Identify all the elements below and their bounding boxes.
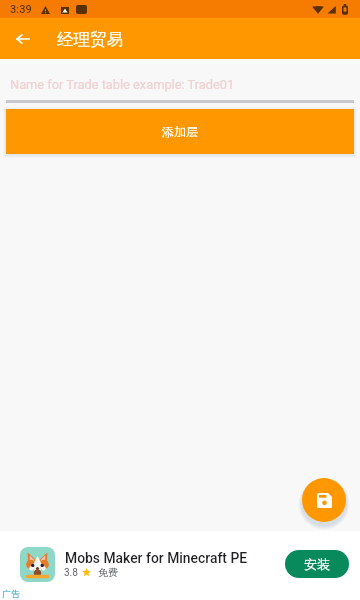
- staticText: 添加层: [162, 124, 198, 139]
- staticText: Name for Trade table example: Trade01: [10, 77, 235, 92]
- button[interactable]: 安装: [285, 550, 349, 578]
- staticText: 3.8: [64, 567, 78, 579]
- staticText: 广告: [2, 588, 20, 599]
- staticText: 安装: [304, 556, 330, 572]
- staticText: 3:39: [10, 3, 32, 16]
- staticText: 免费: [98, 566, 118, 579]
- button[interactable]: 添加层: [6, 109, 354, 154]
- button[interactable]: Back: [8, 24, 37, 53]
- staticText: Mobs Maker for Minecraft PE: [65, 550, 248, 566]
- button[interactable]: Save: [302, 478, 346, 522]
- staticText: 经理贸易: [57, 29, 123, 50]
